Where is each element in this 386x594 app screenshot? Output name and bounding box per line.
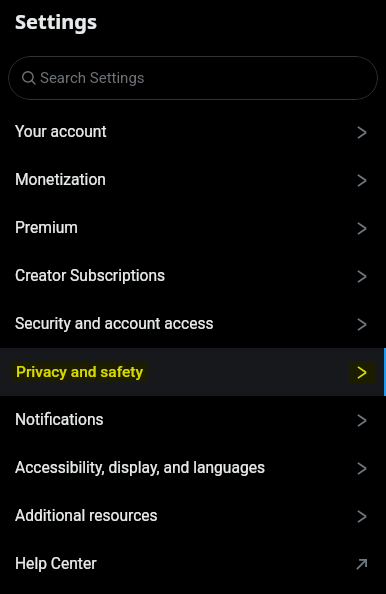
- staticText: Search Settings: [40, 69, 145, 87]
- button[interactable]: Creator Subscriptions: [0, 252, 386, 300]
- button[interactable]: Premium: [0, 204, 386, 252]
- button[interactable]: Privacy and safety: [0, 348, 386, 396]
- staticText: Your account: [15, 123, 107, 141]
- button[interactable]: Your account: [0, 108, 386, 156]
- staticText: Security and account access: [15, 315, 214, 333]
- staticText: Monetization: [15, 171, 106, 189]
- button[interactable]: Monetization: [0, 156, 386, 204]
- staticText: Privacy and safety: [16, 363, 144, 381]
- staticText: Premium: [15, 219, 78, 237]
- button[interactable]: Notifications: [0, 396, 386, 444]
- button[interactable]: Additional resources: [0, 492, 386, 540]
- staticText: Additional resources: [15, 507, 158, 525]
- staticText: Notifications: [15, 411, 104, 429]
- staticText: Settings: [15, 8, 97, 35]
- button[interactable]: Accessibility, display, and languages: [0, 444, 386, 492]
- button[interactable]: Search Settings: [8, 56, 378, 100]
- staticText: Help Center: [15, 555, 97, 573]
- button[interactable]: Help Center: [0, 540, 386, 588]
- button[interactable]: Security and account access: [0, 300, 386, 348]
- staticText: Accessibility, display, and languages: [15, 459, 265, 477]
- staticText: Creator Subscriptions: [15, 267, 166, 285]
